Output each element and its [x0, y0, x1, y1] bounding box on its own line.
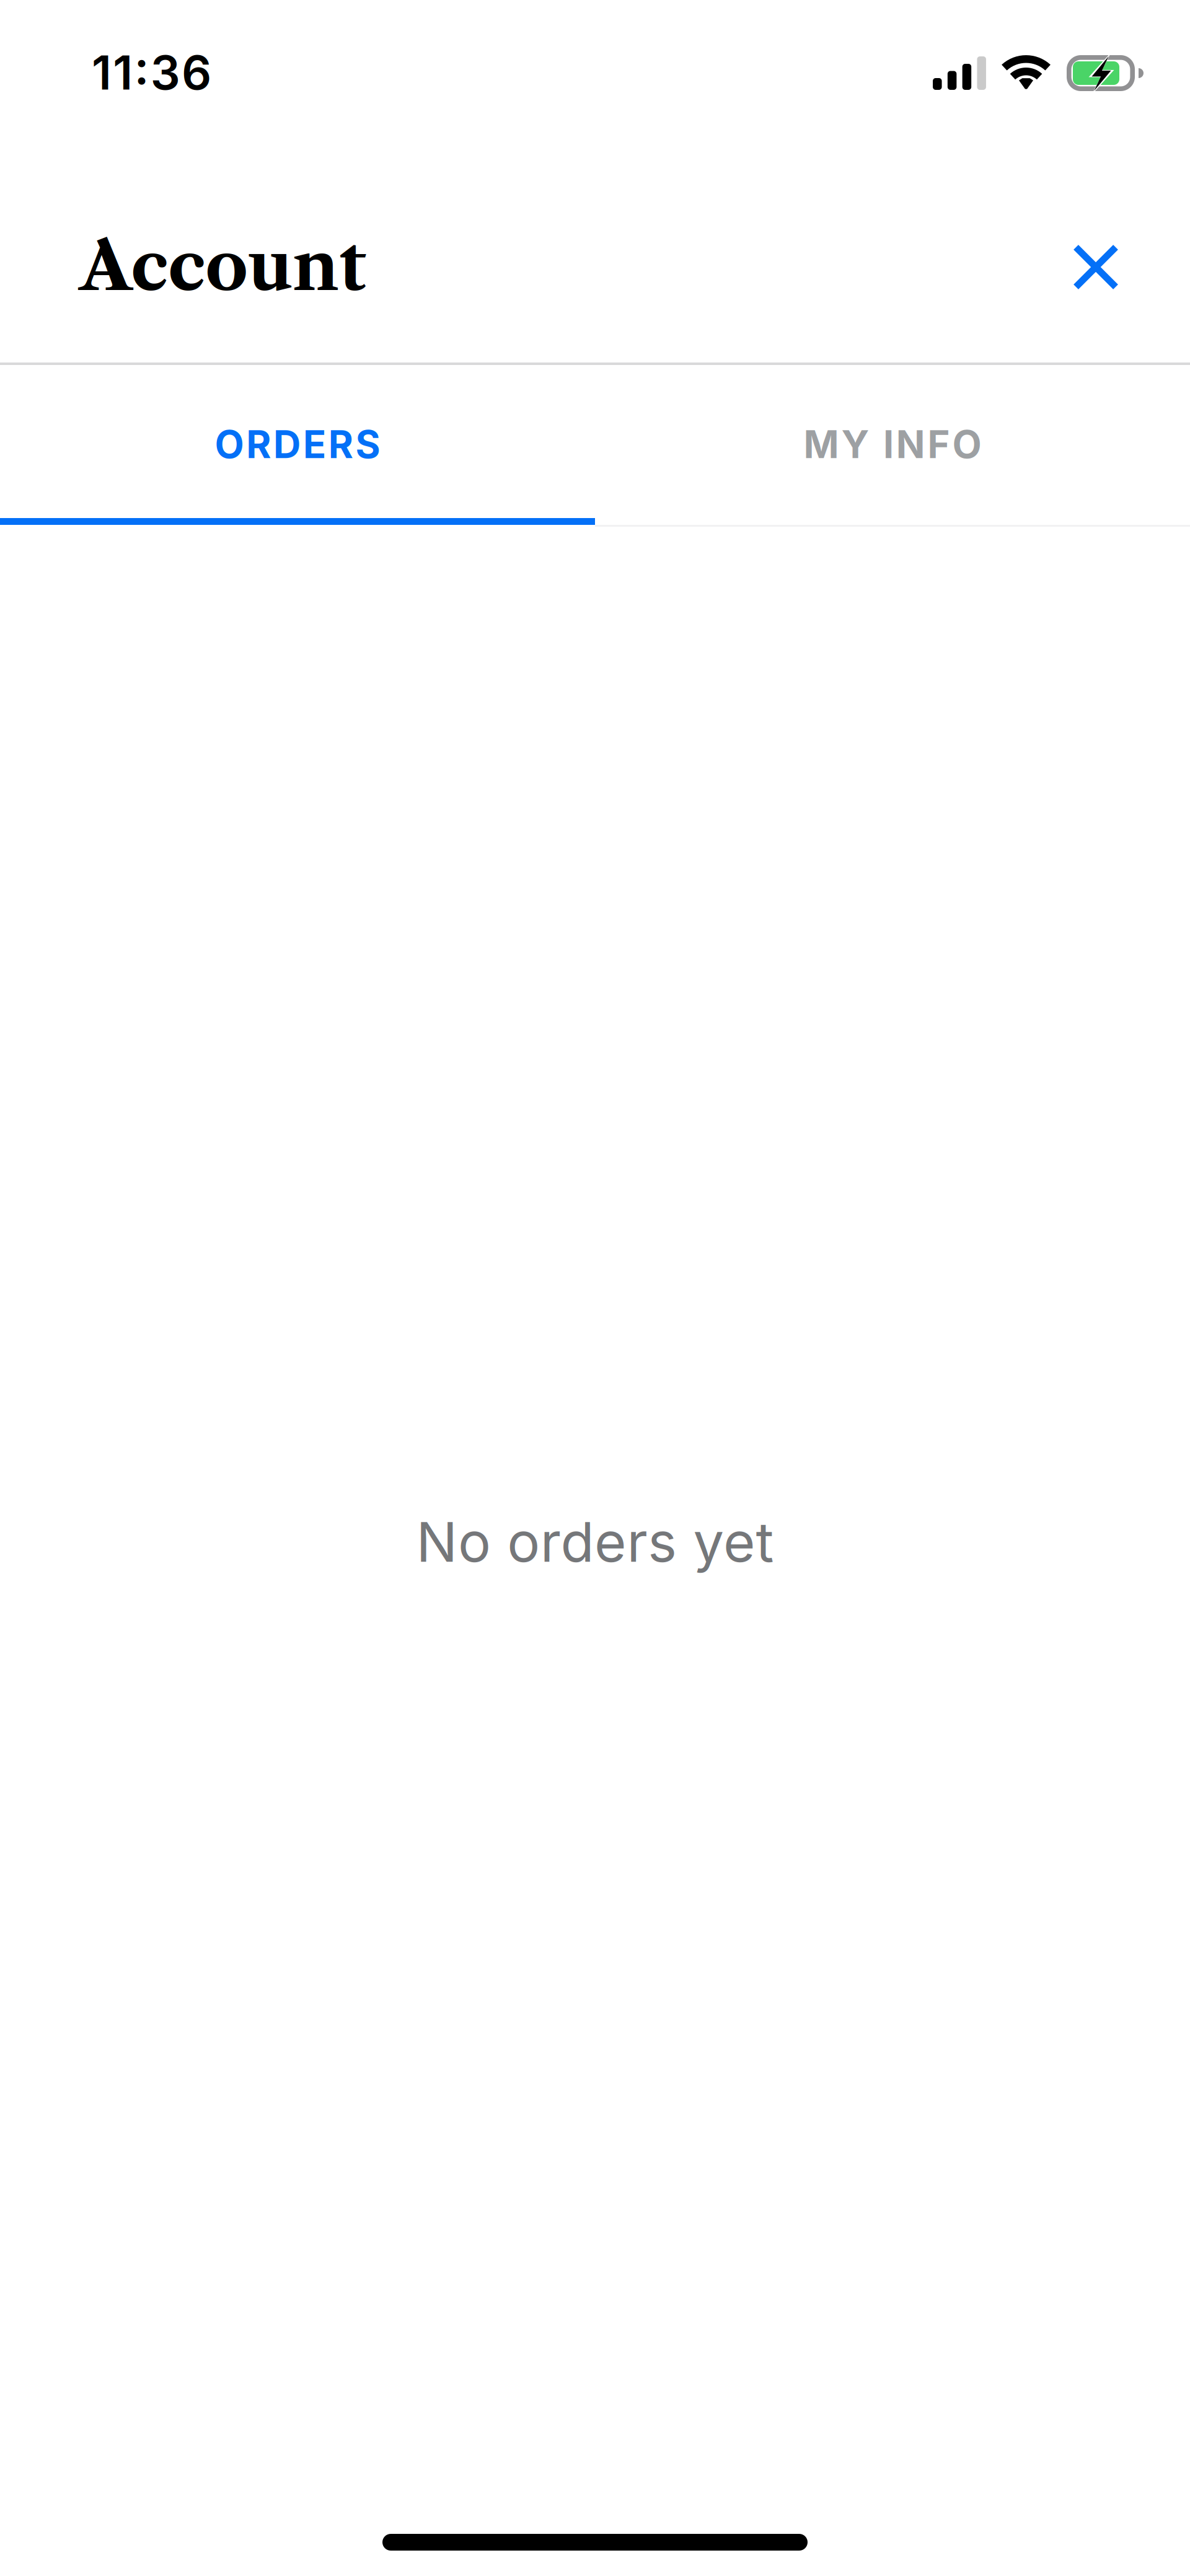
button[interactable]: MY INFO — [595, 365, 1190, 527]
staticText: 11:36 — [92, 44, 211, 101]
button[interactable]: ORDERS — [0, 365, 595, 527]
staticText: No orders yet — [416, 1509, 774, 1575]
staticText: ORDERS — [215, 421, 380, 467]
button[interactable]: Close — [1056, 227, 1136, 307]
staticText: MY INFO — [804, 421, 981, 467]
staticText: Account — [79, 224, 366, 308]
